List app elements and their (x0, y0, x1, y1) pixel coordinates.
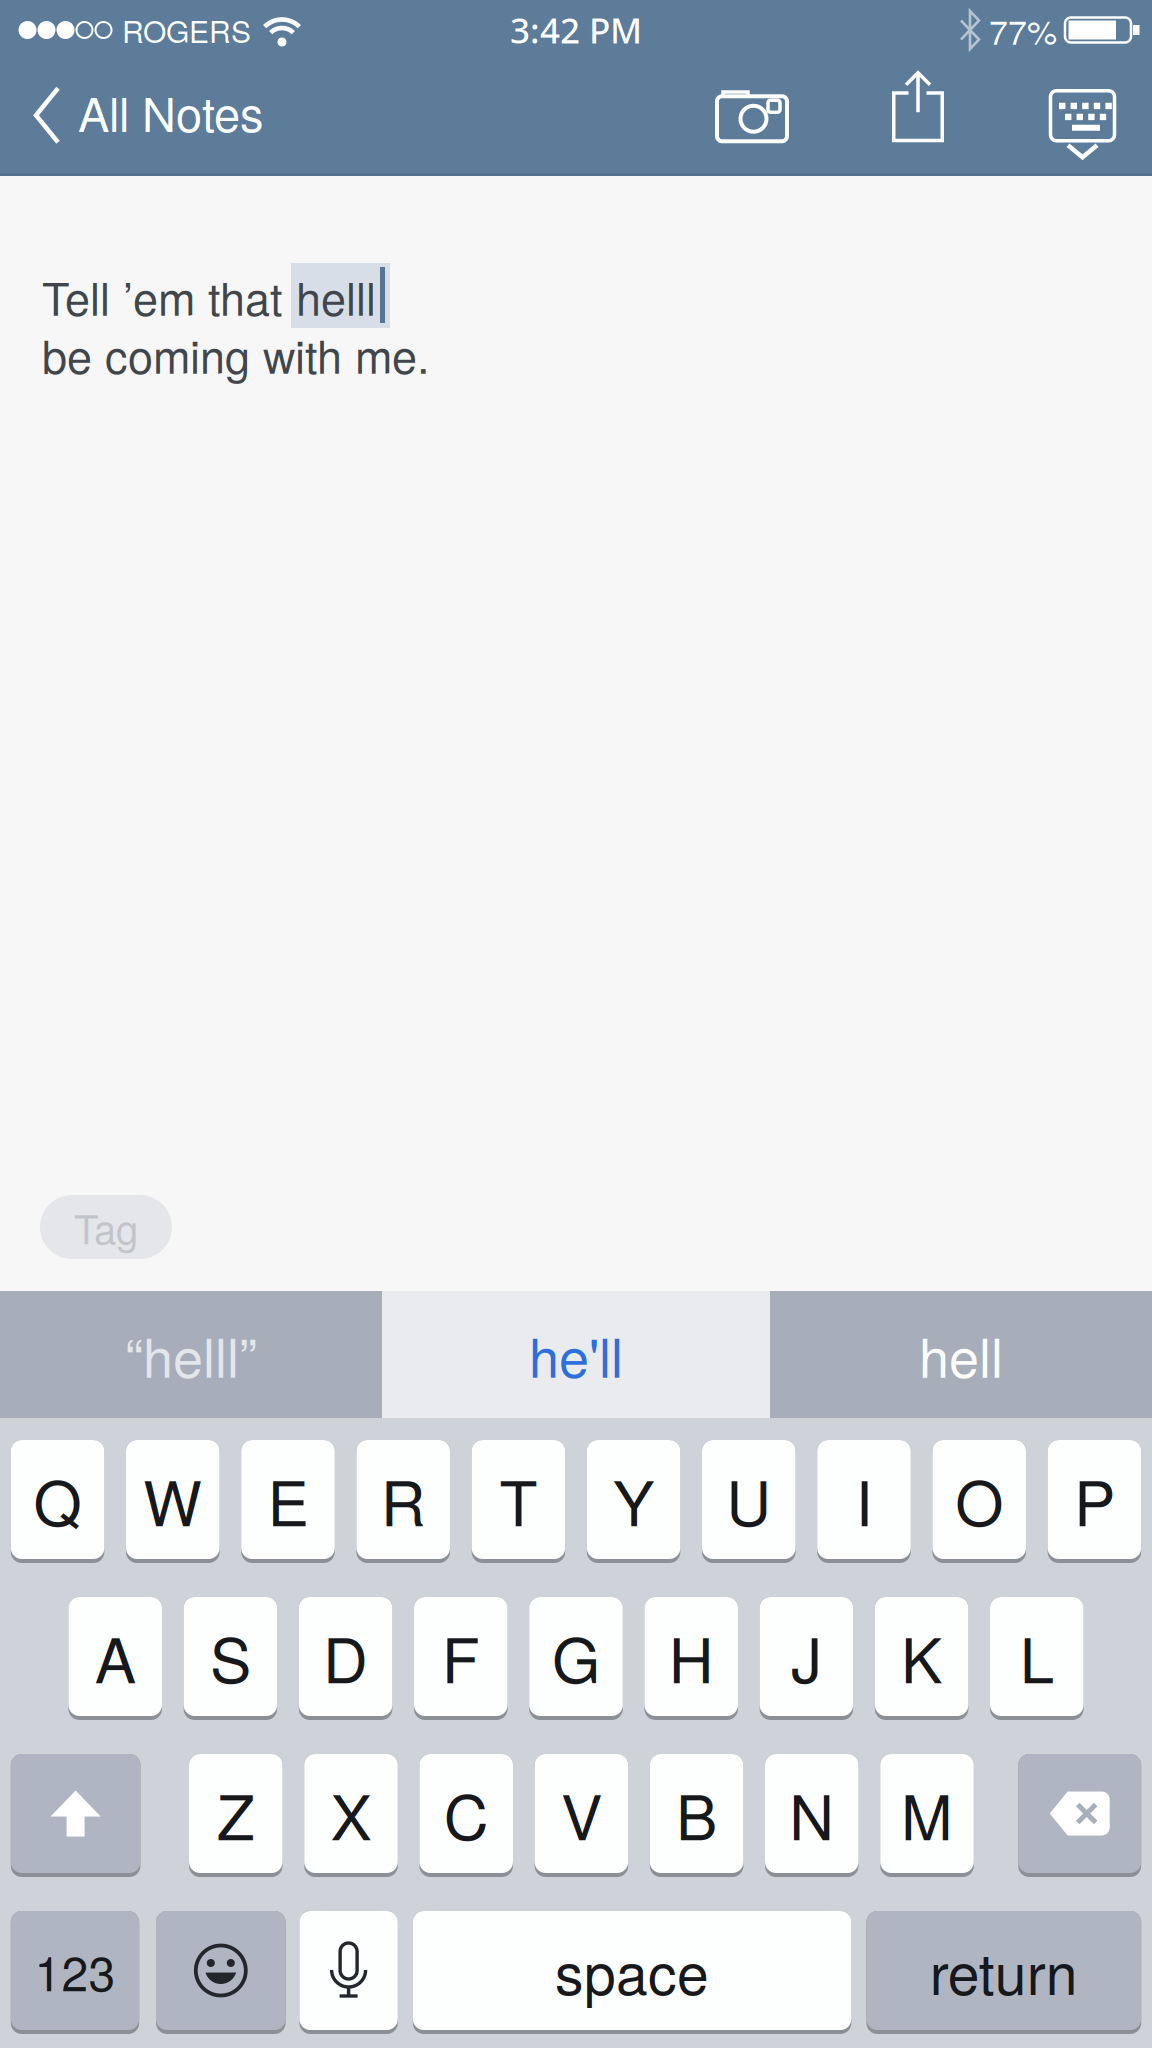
button[interactable]: H (644, 1597, 738, 1720)
button[interactable]: “helll” (0, 1291, 382, 1418)
staticText: 3:42 PM (510, 6, 642, 54)
staticText: G (552, 1612, 600, 1701)
button[interactable]: E (241, 1440, 335, 1563)
button[interactable]: Tag (40, 1195, 172, 1259)
staticText: B (676, 1769, 717, 1858)
button[interactable]: L (990, 1597, 1084, 1720)
staticText: H (669, 1612, 714, 1701)
staticText: W (143, 1455, 202, 1544)
button[interactable]: A (68, 1597, 162, 1720)
button[interactable]: M (880, 1754, 974, 1877)
button[interactable]: G (529, 1597, 623, 1720)
button[interactable]: 123 (11, 1911, 139, 2034)
staticText: U (726, 1455, 771, 1544)
staticText: ROGERS (122, 8, 251, 51)
button[interactable]: Z (189, 1754, 283, 1877)
staticText: C (444, 1769, 489, 1858)
staticText: T (499, 1455, 537, 1544)
staticText: M (901, 1769, 953, 1858)
button[interactable]: V (535, 1754, 628, 1877)
staticText: “helll” (125, 1316, 257, 1393)
staticText: P (1074, 1455, 1115, 1544)
button[interactable] (716, 60, 788, 173)
button[interactable]: X (304, 1754, 398, 1877)
staticText: Y (613, 1455, 654, 1544)
button[interactable] (1049, 60, 1119, 173)
staticText: Tag (74, 1198, 138, 1256)
staticText: E (267, 1455, 308, 1544)
button[interactable]: C (419, 1754, 513, 1877)
button[interactable]: K (875, 1597, 968, 1720)
staticText: All Notes (78, 78, 264, 145)
staticText: Tell ’em that helll (42, 264, 376, 328)
button[interactable]: he'll (382, 1291, 770, 1418)
staticText: F (442, 1612, 480, 1701)
staticText: space (555, 1930, 709, 2011)
button[interactable] (1018, 1754, 1141, 1877)
staticText: Z (217, 1769, 255, 1858)
staticText: A (95, 1612, 136, 1701)
staticText: X (330, 1769, 371, 1858)
staticText: L (1020, 1612, 1054, 1701)
button[interactable]: P (1048, 1440, 1141, 1563)
button[interactable]: W (126, 1440, 220, 1563)
button[interactable]: space (413, 1911, 851, 2034)
staticText: 123 (34, 1936, 115, 2005)
staticText: I (855, 1455, 872, 1544)
button[interactable]: D (299, 1597, 392, 1720)
button[interactable]: All Notes (0, 60, 264, 173)
button[interactable] (11, 1754, 140, 1877)
staticText: N (789, 1769, 834, 1858)
button[interactable] (299, 1911, 398, 2034)
button[interactable] (891, 60, 945, 173)
button[interactable] (156, 1911, 286, 2034)
button[interactable]: S (184, 1597, 277, 1720)
staticText: return (930, 1930, 1078, 2011)
button[interactable]: F (414, 1597, 508, 1720)
button[interactable]: N (765, 1754, 859, 1877)
staticText: O (955, 1455, 1003, 1544)
staticText: hell (919, 1316, 1003, 1393)
staticText: V (561, 1769, 602, 1858)
staticText: D (323, 1612, 368, 1701)
button[interactable]: return (866, 1911, 1141, 2034)
staticText: R (381, 1455, 426, 1544)
button[interactable]: T (472, 1440, 565, 1563)
staticText: 77% (989, 6, 1057, 54)
staticText: be coming with me. (42, 322, 430, 386)
button[interactable]: hell (770, 1291, 1152, 1418)
button[interactable]: I (817, 1440, 911, 1563)
staticText: he'll (529, 1316, 623, 1393)
staticText: K (901, 1612, 942, 1701)
button[interactable]: J (760, 1597, 853, 1720)
button[interactable]: B (650, 1754, 743, 1877)
button[interactable]: R (356, 1440, 450, 1563)
staticText: J (791, 1612, 822, 1701)
staticText: S (210, 1612, 251, 1701)
button[interactable]: U (702, 1440, 796, 1563)
button[interactable]: Y (587, 1440, 680, 1563)
staticText: Q (34, 1455, 82, 1544)
button[interactable]: Q (11, 1440, 104, 1563)
button[interactable]: O (932, 1440, 1026, 1563)
